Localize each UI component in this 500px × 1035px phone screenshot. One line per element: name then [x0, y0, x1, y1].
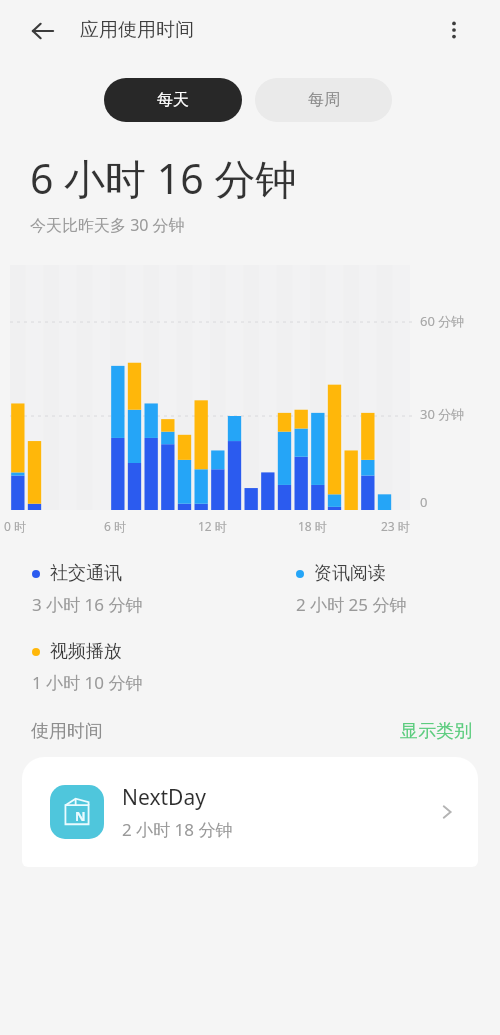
staticText: 应用使用时间	[80, 18, 194, 42]
staticText: 18 时	[298, 518, 327, 534]
staticText: 6 小时 16 分钟	[30, 150, 297, 206]
staticText: 每周	[308, 90, 340, 110]
staticText: 使用时间	[31, 720, 103, 743]
staticText: 12 时	[198, 518, 227, 534]
button[interactable]: 每周	[255, 78, 392, 122]
staticText: 30 分钟	[420, 405, 465, 423]
staticText: 2 小时 18 分钟	[122, 818, 233, 841]
staticText: 显示类别	[400, 720, 472, 743]
staticText: 视频播放	[50, 640, 122, 663]
staticText: 2 小时 25 分钟	[296, 593, 407, 616]
staticText: 0 时	[4, 518, 26, 534]
staticText: 3 小时 16 分钟	[32, 593, 143, 616]
staticText: 资讯阅读	[314, 562, 386, 585]
button[interactable]: 每天	[104, 78, 242, 122]
staticText: 60 分钟	[420, 312, 465, 330]
staticText: 1 小时 10 分钟	[32, 671, 143, 694]
button[interactable]: More options	[432, 8, 476, 52]
button[interactable]: N	[22, 757, 478, 867]
staticText: 每天	[157, 90, 189, 110]
staticText: NextDay	[122, 783, 206, 812]
button[interactable]: 显示类别	[400, 720, 472, 743]
staticText: 社交通讯	[50, 562, 122, 585]
staticText: 23 时	[381, 518, 410, 534]
button[interactable]: Back	[22, 10, 64, 52]
staticText: N	[75, 807, 86, 825]
staticText: 0	[420, 493, 428, 511]
staticText: 今天比昨天多 30 分钟	[30, 214, 185, 236]
staticText: 6 时	[104, 518, 126, 534]
